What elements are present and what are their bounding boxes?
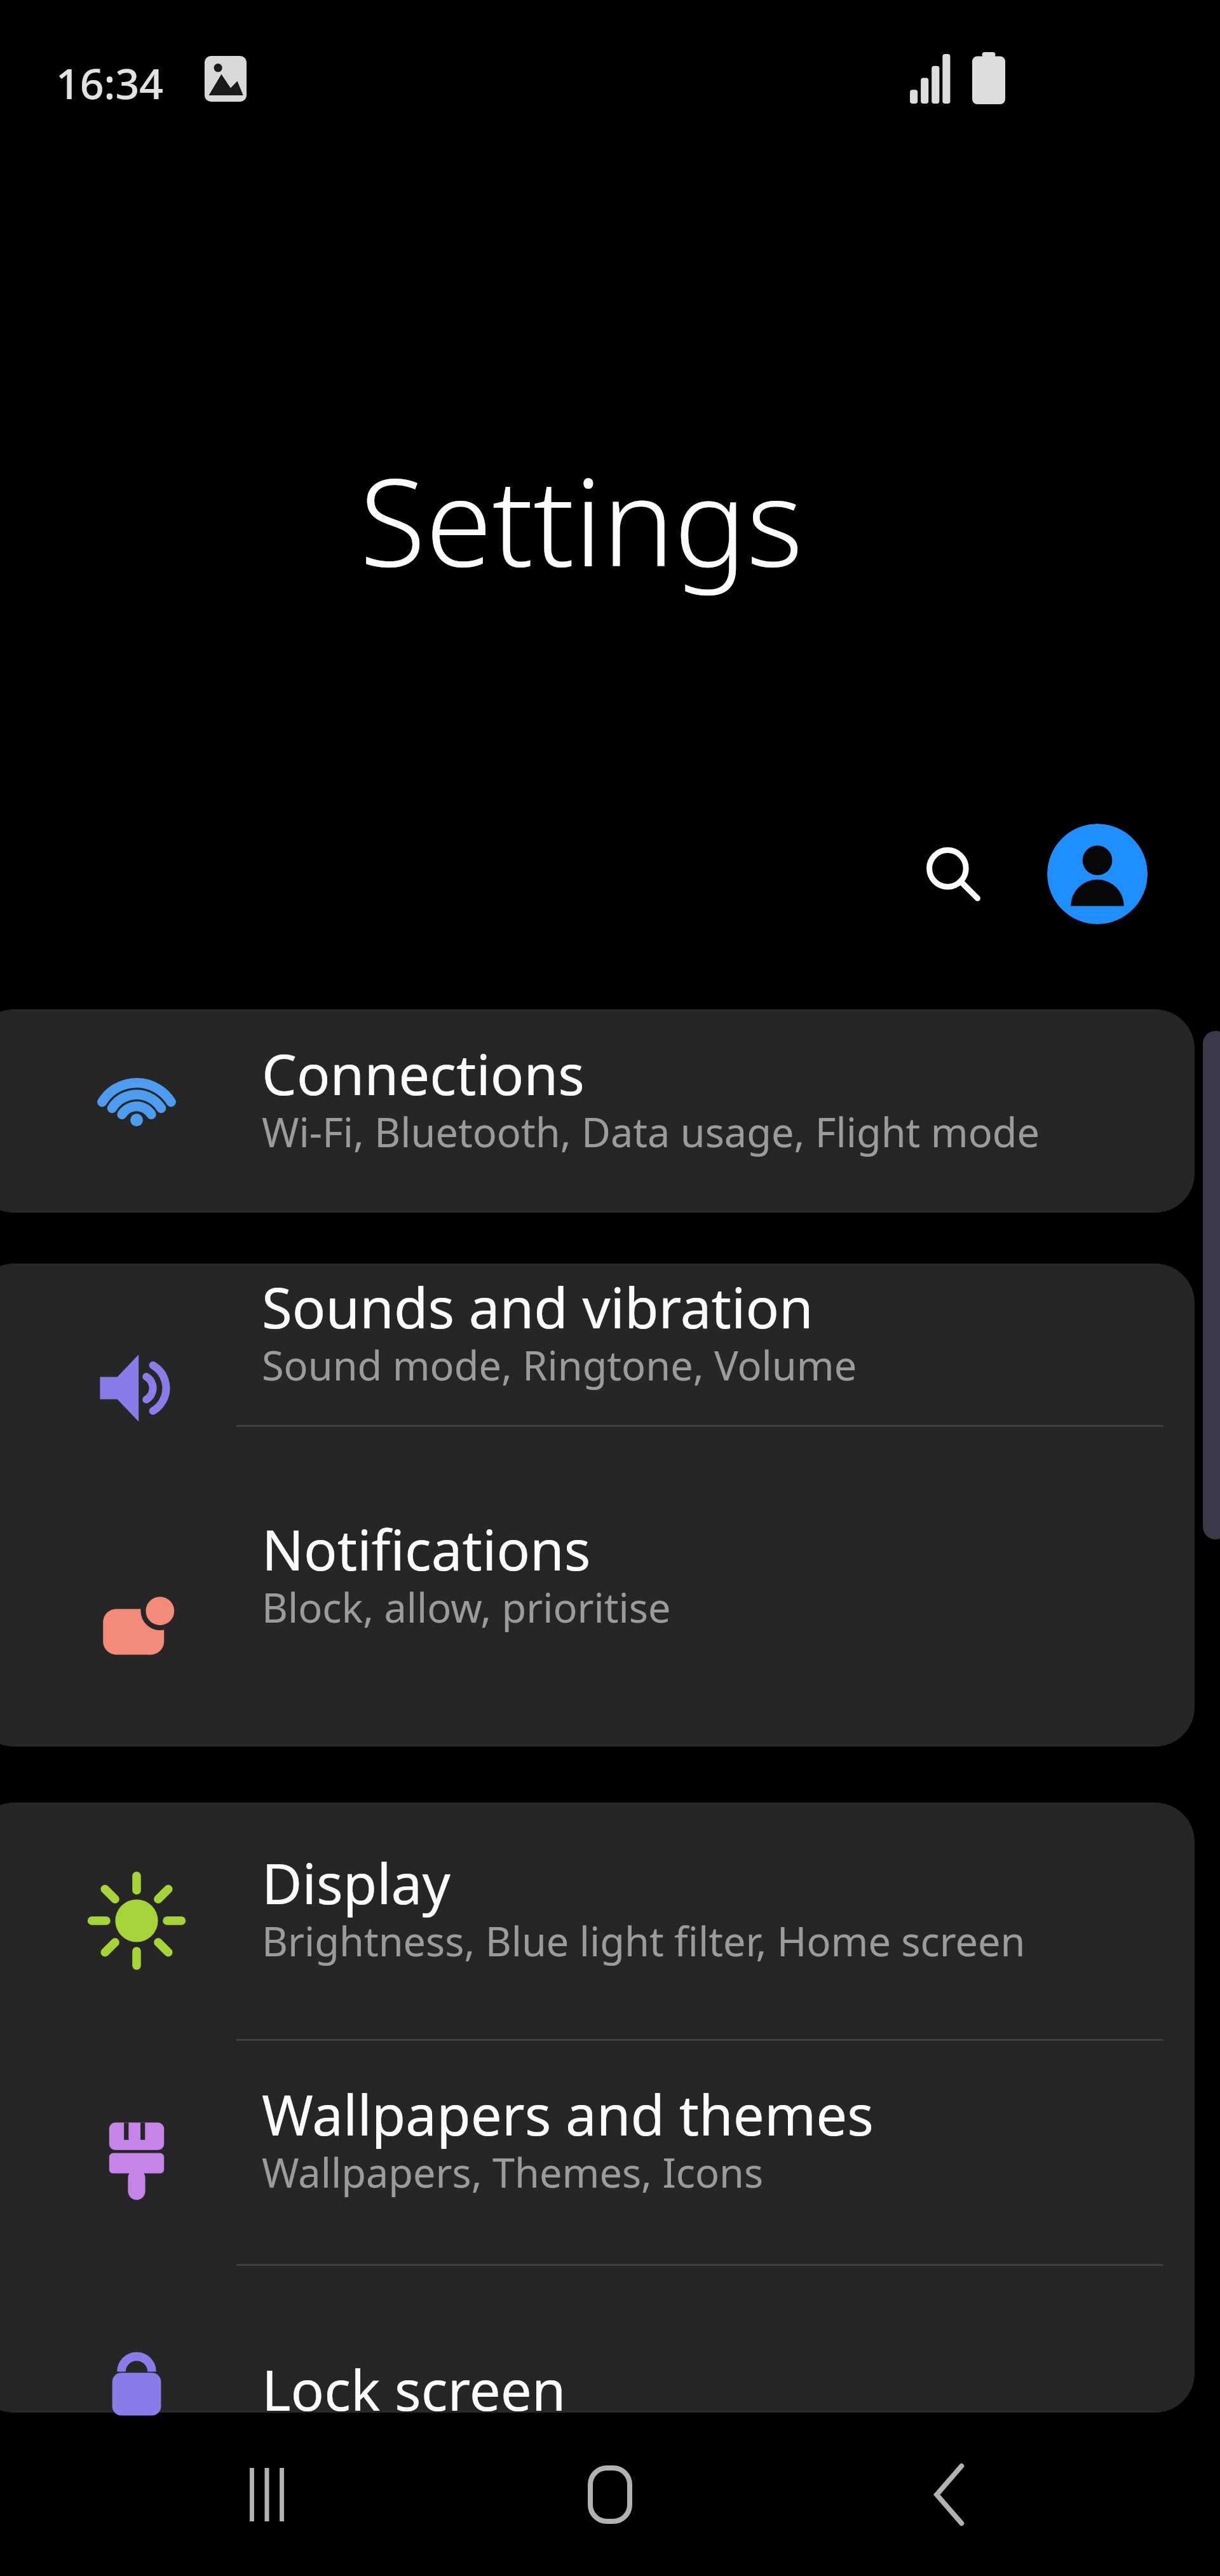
button[interactable] <box>0 1803 1195 2038</box>
staticText: Sound mode, Ringtone, Volume <box>262 1338 857 1393</box>
button[interactable]: Recent apps <box>216 2444 318 2545</box>
button[interactable] <box>0 1426 1195 1747</box>
staticText: Settings <box>360 437 803 602</box>
staticText: Wallpapers, Themes, Icons <box>262 2145 764 2200</box>
staticText: Brightness, Blue light filter, Home scre… <box>262 1914 1026 1968</box>
staticText: Display <box>262 1845 451 1920</box>
staticText: Notifications <box>262 1511 591 1586</box>
button[interactable] <box>0 2265 1195 2413</box>
button[interactable]: Account <box>1047 824 1148 924</box>
staticText: Connections <box>262 1036 585 1111</box>
button[interactable]: Home <box>559 2444 661 2545</box>
staticText: Sounds and vibration <box>262 1269 813 1344</box>
staticText: Block, allow, prioritise <box>262 1580 671 1635</box>
staticText: Wallpapers and themes <box>262 2076 874 2151</box>
button[interactable] <box>0 1264 1195 1425</box>
staticText: Lock screen <box>262 2352 566 2427</box>
button[interactable]: Back <box>899 2444 1001 2545</box>
button[interactable] <box>0 2040 1195 2263</box>
button[interactable] <box>0 1009 1195 1213</box>
button[interactable]: Search <box>910 831 996 917</box>
staticText: 16:34 <box>56 54 163 111</box>
staticText: Wi-Fi, Bluetooth, Data usage, Flight mod… <box>262 1105 1040 1159</box>
